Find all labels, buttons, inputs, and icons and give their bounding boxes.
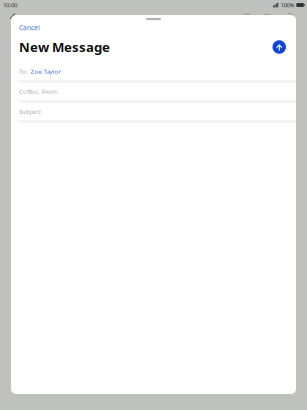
staticText: New Message — [19, 38, 110, 56]
staticText: To: — [19, 67, 28, 76]
staticText: Cancel — [19, 23, 40, 32]
staticText: 10:00 — [3, 1, 17, 9]
staticText: Subject: — [19, 107, 42, 116]
staticText: Zoe Taylor — [30, 67, 61, 76]
staticText: Cc/Bcc, From: — [19, 87, 59, 96]
button[interactable]: Subject: — [11, 102, 296, 122]
button[interactable]: Send — [272, 40, 286, 54]
staticText: 100% — [280, 1, 294, 9]
button[interactable]: Cc/Bcc, From: — [11, 82, 296, 102]
button[interactable]: To: — [11, 62, 296, 82]
button[interactable]: Cancel — [19, 23, 40, 32]
